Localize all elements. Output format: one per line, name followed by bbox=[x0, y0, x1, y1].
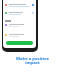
button[interactable] bbox=[5, 23, 34, 27]
button[interactable] bbox=[6, 41, 33, 45]
staticText: Make a positive impact bbox=[16, 56, 49, 66]
button[interactable] bbox=[5, 3, 34, 7]
button[interactable] bbox=[5, 11, 34, 15]
button[interactable] bbox=[5, 33, 34, 37]
